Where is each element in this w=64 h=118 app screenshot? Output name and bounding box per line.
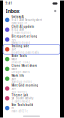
button[interactable]: Trailing side [3, 44, 60, 54]
staticText: Inbox [5, 7, 19, 15]
staticText: Mon [11, 57, 17, 61]
staticText: Sun [11, 77, 16, 80]
staticText: Sat [11, 96, 14, 100]
staticText: Board activity [16, 96, 33, 100]
staticText: 3 cards moved [11, 100, 30, 103]
button[interactable]: Mint Grid morning [3, 84, 60, 93]
button[interactable]: Clone Meet share [3, 64, 60, 74]
staticText: Slide Tools [11, 54, 26, 58]
staticText: Clone Meet share [11, 64, 37, 67]
staticText: 9:41 AM [11, 18, 23, 22]
staticText: Markets closed [11, 41, 30, 44]
staticText: Work life [11, 74, 24, 77]
staticText: Tue [11, 38, 16, 41]
button[interactable]: Bit report at long [3, 35, 60, 44]
staticText: Standup notes [11, 80, 31, 83]
staticText: main a3f21c [11, 109, 27, 113]
staticText: 8:02 AM [11, 28, 23, 31]
staticText: Sun [11, 87, 16, 90]
button[interactable]: Galaxy AI [3, 15, 60, 25]
staticText: Galaxy AI [11, 15, 24, 18]
button[interactable]: Slide Tools [3, 54, 60, 64]
button[interactable]: Site Tools build [3, 103, 60, 113]
staticText: Invoice 1042 [11, 60, 30, 64]
staticText: New sign in [11, 21, 27, 25]
staticText: Site Tools build [11, 103, 33, 107]
staticText: Security alert [25, 18, 42, 22]
staticText: Bit report at long [11, 35, 37, 38]
staticText: Chill AI update [11, 25, 34, 28]
staticText: Design assets [11, 70, 29, 74]
button[interactable]: Work life [3, 74, 60, 84]
staticText: Tue [11, 47, 16, 51]
staticText: Boarding pass ready [11, 51, 38, 54]
staticText: Theme Lab [11, 93, 28, 97]
staticText: Trailing side [11, 44, 29, 48]
button[interactable]: Search [53, 9, 57, 13]
staticText: 9:41 [5, 2, 12, 5]
staticText: Mint Grid morning [11, 84, 38, 87]
staticText: Top stories [11, 90, 26, 93]
button[interactable]: Chill AI update [3, 25, 60, 35]
staticText: Mon [11, 67, 17, 71]
button[interactable]: Theme Lab [3, 93, 60, 103]
staticText: Fri [11, 106, 14, 110]
staticText: 3 new replies [11, 31, 30, 34]
